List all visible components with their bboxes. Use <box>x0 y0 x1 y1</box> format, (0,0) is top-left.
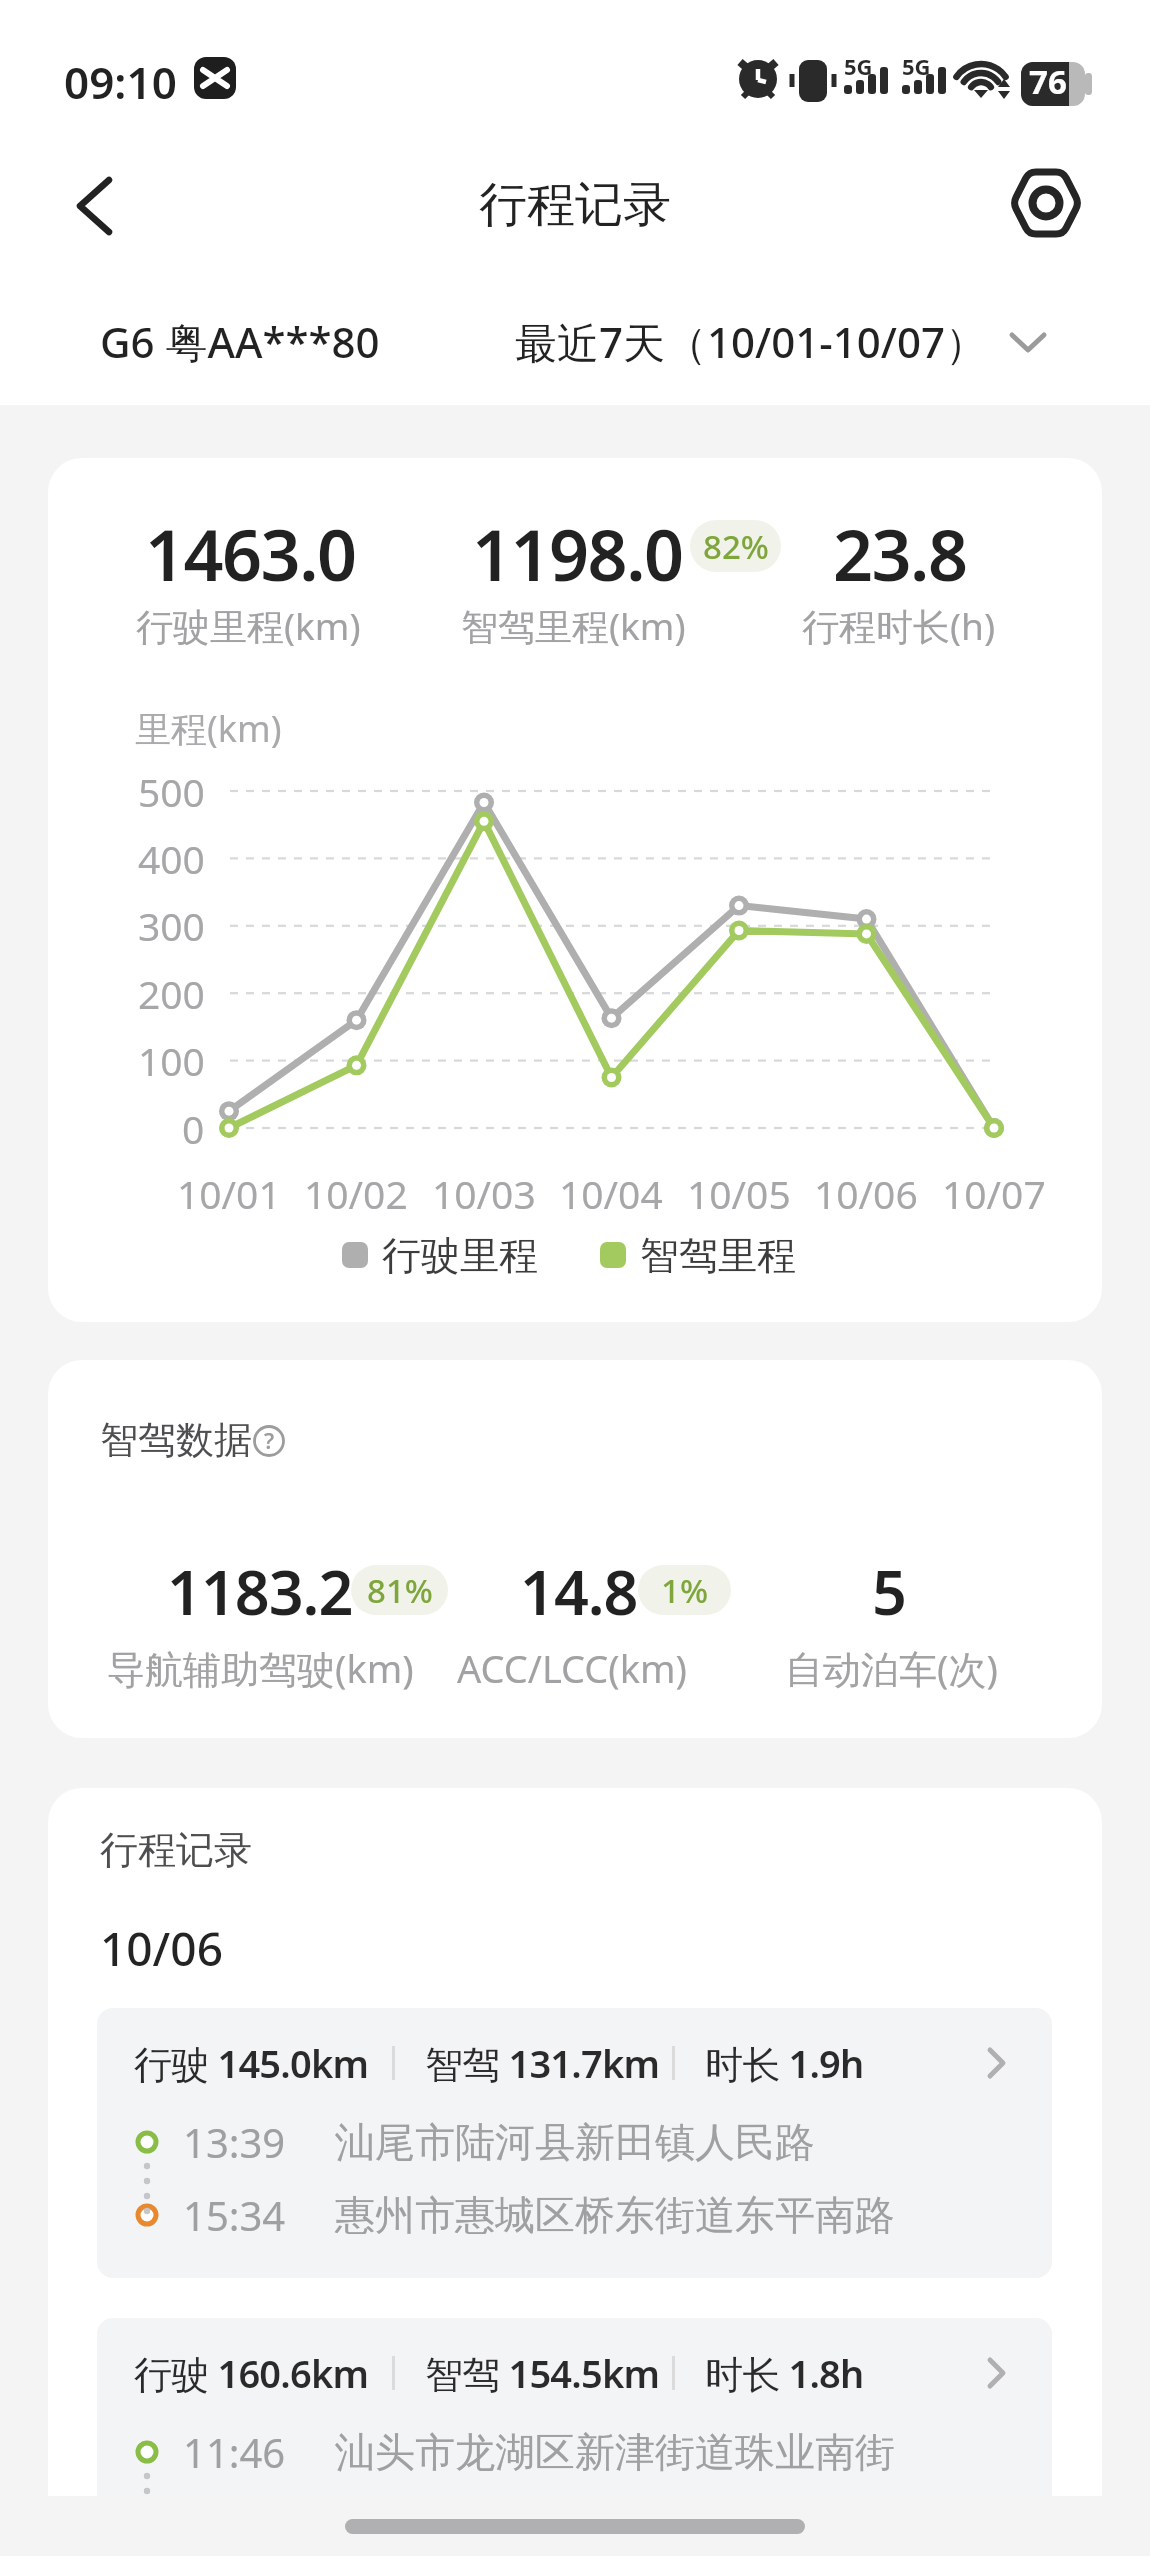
staticText: 10/06 <box>814 1167 918 1220</box>
staticText: 10/06 <box>100 1917 223 1980</box>
staticText: 汕头市龙湖区新津街道珠业南街 <box>335 2427 895 2477</box>
staticText: 智驾里程(km) <box>461 600 686 651</box>
button[interactable]: 行驶 160.6km <box>97 2318 1052 2556</box>
staticText: 时长 1.8h <box>705 2347 864 2399</box>
staticText: 13:39 <box>183 2115 286 2169</box>
staticText: 1463.0 <box>145 506 356 586</box>
staticText: 导航辅助驾驶(km) <box>107 1642 414 1694</box>
staticText: 里程(km) <box>135 704 282 753</box>
staticText: 行程记录 <box>100 1826 252 1874</box>
button[interactable]: 最近7天（10/01-10/07） <box>440 300 1060 382</box>
staticText: 时长 1.9h <box>705 2037 864 2089</box>
button[interactable]: 行驶 145.0km <box>97 2008 1052 2278</box>
staticText: 智驾 131.7km <box>425 2037 660 2089</box>
staticText: 09:10 <box>64 52 177 112</box>
staticText: ACC/LCC(km) <box>457 1642 687 1694</box>
staticText: 惠州市惠城区桥东街道东平南路 <box>335 2190 895 2240</box>
staticText: G6 粤AA***80 <box>100 313 380 370</box>
button[interactable]: ? <box>252 1424 286 1458</box>
staticText: 5 <box>872 1550 906 1630</box>
staticText: 汕尾市陆河县新田镇人民路 <box>335 2117 815 2167</box>
staticText: 自动泊车(次) <box>785 1642 998 1694</box>
staticText: 行驶里程(km) <box>136 600 361 651</box>
staticText: 82% <box>703 524 769 569</box>
staticText: 100 <box>138 1034 205 1087</box>
staticText: 11:46 <box>183 2425 286 2479</box>
staticText: ? <box>264 1425 275 1455</box>
staticText: 行程记录 <box>479 175 671 235</box>
staticText: 10/04 <box>559 1167 663 1220</box>
staticText: 行驶 160.6km <box>134 2347 369 2399</box>
staticText: 14.8 <box>520 1550 638 1630</box>
staticText: 10/03 <box>432 1167 536 1220</box>
staticText: 智驾 154.5km <box>425 2347 660 2399</box>
button[interactable] <box>60 168 136 244</box>
staticText: 76 <box>1029 59 1067 104</box>
staticText: 10/01 <box>177 1167 281 1220</box>
button[interactable] <box>1005 165 1085 241</box>
staticText: 500 <box>138 765 205 818</box>
staticText: 300 <box>138 899 205 952</box>
staticText: 行驶 145.0km <box>134 2037 369 2089</box>
staticText: 200 <box>138 967 205 1020</box>
staticText: 1% <box>661 1568 708 1613</box>
staticText: 400 <box>138 832 205 885</box>
staticText: 5G <box>844 51 873 81</box>
staticText: 5G <box>902 51 931 81</box>
staticText: 81% <box>367 1568 433 1613</box>
staticText: 1183.2 <box>167 1550 353 1630</box>
staticText: 10/05 <box>687 1167 791 1220</box>
staticText: 行驶里程 <box>382 1231 538 1280</box>
staticText: 15:34 <box>183 2188 286 2242</box>
staticText: 行程时长(h) <box>802 600 996 651</box>
staticText: 23.8 <box>833 506 967 586</box>
staticText: 10/02 <box>304 1167 408 1220</box>
staticText: 10/07 <box>942 1167 1046 1220</box>
staticText: 最近7天（10/01-10/07） <box>515 313 988 370</box>
staticText: 1198.0 <box>472 506 683 586</box>
staticText: 0 <box>182 1102 205 1155</box>
staticText: 智驾里程 <box>640 1231 796 1280</box>
staticText: 智驾数据 <box>100 1416 252 1464</box>
